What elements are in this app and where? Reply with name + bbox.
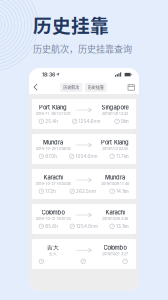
staticText: 吉大 xyxy=(49,252,57,256)
staticText: 25.4h xyxy=(45,118,58,124)
staticText: 2019/10/29 11:40 xyxy=(101,181,129,186)
staticText: Karachi xyxy=(43,174,62,181)
button[interactable]: 历史航次 xyxy=(60,83,82,92)
staticText: Karachi xyxy=(105,209,124,216)
staticText: 262.5nm xyxy=(76,188,96,194)
staticText: 17.2h xyxy=(45,188,56,194)
staticText: Colombo xyxy=(103,244,126,251)
staticText: 9kn xyxy=(121,118,129,124)
button[interactable]: Calendar xyxy=(124,81,139,94)
button[interactable]: Colombo xyxy=(32,204,136,234)
button[interactable]: 吉大 xyxy=(32,239,136,269)
staticText: 1254.0nm xyxy=(76,223,98,229)
staticText: 吉大 xyxy=(47,244,59,251)
button[interactable]: Back xyxy=(29,81,43,94)
staticText: 2019-11-08 15:15:07 xyxy=(35,111,70,116)
staticText: Port Klang xyxy=(101,139,129,146)
staticText: 14.1kn xyxy=(116,188,129,194)
staticText: 历史挂靠 xyxy=(33,11,109,38)
staticText: Singapore xyxy=(101,104,128,111)
staticText: Port Klang xyxy=(39,104,67,111)
staticText: 2019/11/2 03:55 xyxy=(102,146,128,151)
staticText: 2019-10-21 16:07:24 xyxy=(35,216,70,221)
staticText: 2019-10-27 16:53:08 xyxy=(35,181,70,186)
staticText: Mundra xyxy=(105,174,125,181)
staticText: 87.0h xyxy=(45,153,57,159)
staticText: Colombo xyxy=(41,209,64,216)
staticText: 2019/11/9 13:42 xyxy=(102,111,128,116)
staticText: Mundra xyxy=(43,139,63,146)
staticText: 历史挂靠 xyxy=(88,84,104,90)
staticText: 历史航次 xyxy=(63,84,79,90)
button[interactable]: 历史挂靠 xyxy=(85,83,107,92)
staticText: 13.1kn xyxy=(116,223,129,229)
staticText: 18:36 xyxy=(42,71,55,78)
button[interactable]: Karachi xyxy=(32,169,136,199)
staticText: 历史航次，历史挂靠查询 xyxy=(33,42,132,55)
button[interactable]: Mundra xyxy=(32,134,136,164)
staticText: 11.7kn xyxy=(116,153,129,159)
staticText: 2019/10/21 3:27 xyxy=(102,252,128,256)
staticText: 2019-10-29 13:58:03 xyxy=(35,146,70,151)
staticText: 85.6h xyxy=(45,223,58,229)
staticText: 2019/10/26 3:46 xyxy=(102,216,128,221)
button[interactable]: Port Klang xyxy=(32,99,136,129)
staticText: 1054.0nm xyxy=(76,153,98,159)
staticText: 1254.6nm xyxy=(79,118,101,124)
